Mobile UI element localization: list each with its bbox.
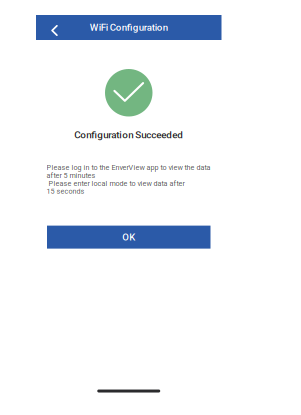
staticText: Please enter local mode to view data aft… xyxy=(46,179,184,188)
staticText: after 5 minutes xyxy=(46,171,95,180)
staticText: Configuration Succeeded xyxy=(74,129,183,141)
button[interactable]: Back xyxy=(36,15,69,40)
staticText: 15 seconds xyxy=(46,187,84,196)
staticText: Please log in to the EnverView app to vi… xyxy=(46,163,210,172)
staticText: WiFi Configuration xyxy=(90,22,168,33)
button[interactable]: OK xyxy=(47,226,210,249)
staticText: OK xyxy=(122,231,135,243)
